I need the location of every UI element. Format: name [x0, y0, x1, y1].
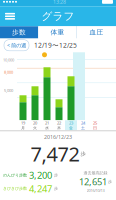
staticText: 10,000: [3, 57, 14, 63]
staticText: 25: [93, 120, 97, 125]
staticText: 2016/10/13: [86, 188, 104, 193]
staticText: 2016/12/23: [44, 133, 72, 140]
staticText: 体重: [50, 28, 64, 36]
staticText: 歩: [80, 150, 85, 157]
staticText: 金: [69, 125, 73, 130]
staticText: 21: [45, 120, 49, 125]
button[interactable]: 歩数: [0, 26, 38, 38]
button[interactable]: 体重: [38, 26, 76, 38]
staticText: 過去最高記録: [83, 170, 107, 175]
staticText: のんびり歩数: [3, 173, 27, 178]
staticText: 歩: [54, 173, 58, 178]
staticText: 22: [57, 120, 61, 125]
button[interactable]: Menu: [3, 11, 17, 22]
staticText: 23: [69, 120, 73, 125]
staticText: 13:28: [53, 0, 66, 5]
staticText: 歩: [54, 186, 58, 191]
staticText: 12/19〜12/25: [34, 41, 77, 50]
button[interactable]: 血圧: [77, 26, 116, 38]
staticText: 7,472: [30, 140, 79, 167]
staticText: 月: [21, 125, 25, 130]
staticText: 24: [81, 120, 85, 125]
staticText: 木: [57, 125, 61, 130]
staticText: 12,651: [79, 175, 107, 188]
staticText: 歩: [108, 179, 112, 184]
staticText: 歩数: [12, 28, 26, 36]
staticText: 血圧: [89, 28, 103, 36]
staticText: きびきび歩数: [3, 186, 27, 191]
staticText: 5,000: [4, 88, 13, 93]
staticText: < 前の週: [7, 42, 26, 49]
staticText: 火: [33, 125, 37, 130]
staticText: グラフ: [41, 10, 74, 23]
staticText: 水: [45, 125, 49, 130]
staticText: 3,200: [29, 169, 52, 181]
staticText: 4,247: [29, 182, 52, 195]
staticText: 8,000: [4, 70, 13, 75]
staticText: 19: [21, 120, 25, 125]
staticText: 日: [93, 125, 97, 130]
button[interactable]: < 前の週: [4, 40, 29, 51]
staticText: 土: [81, 125, 85, 130]
staticText: 20: [33, 120, 37, 125]
